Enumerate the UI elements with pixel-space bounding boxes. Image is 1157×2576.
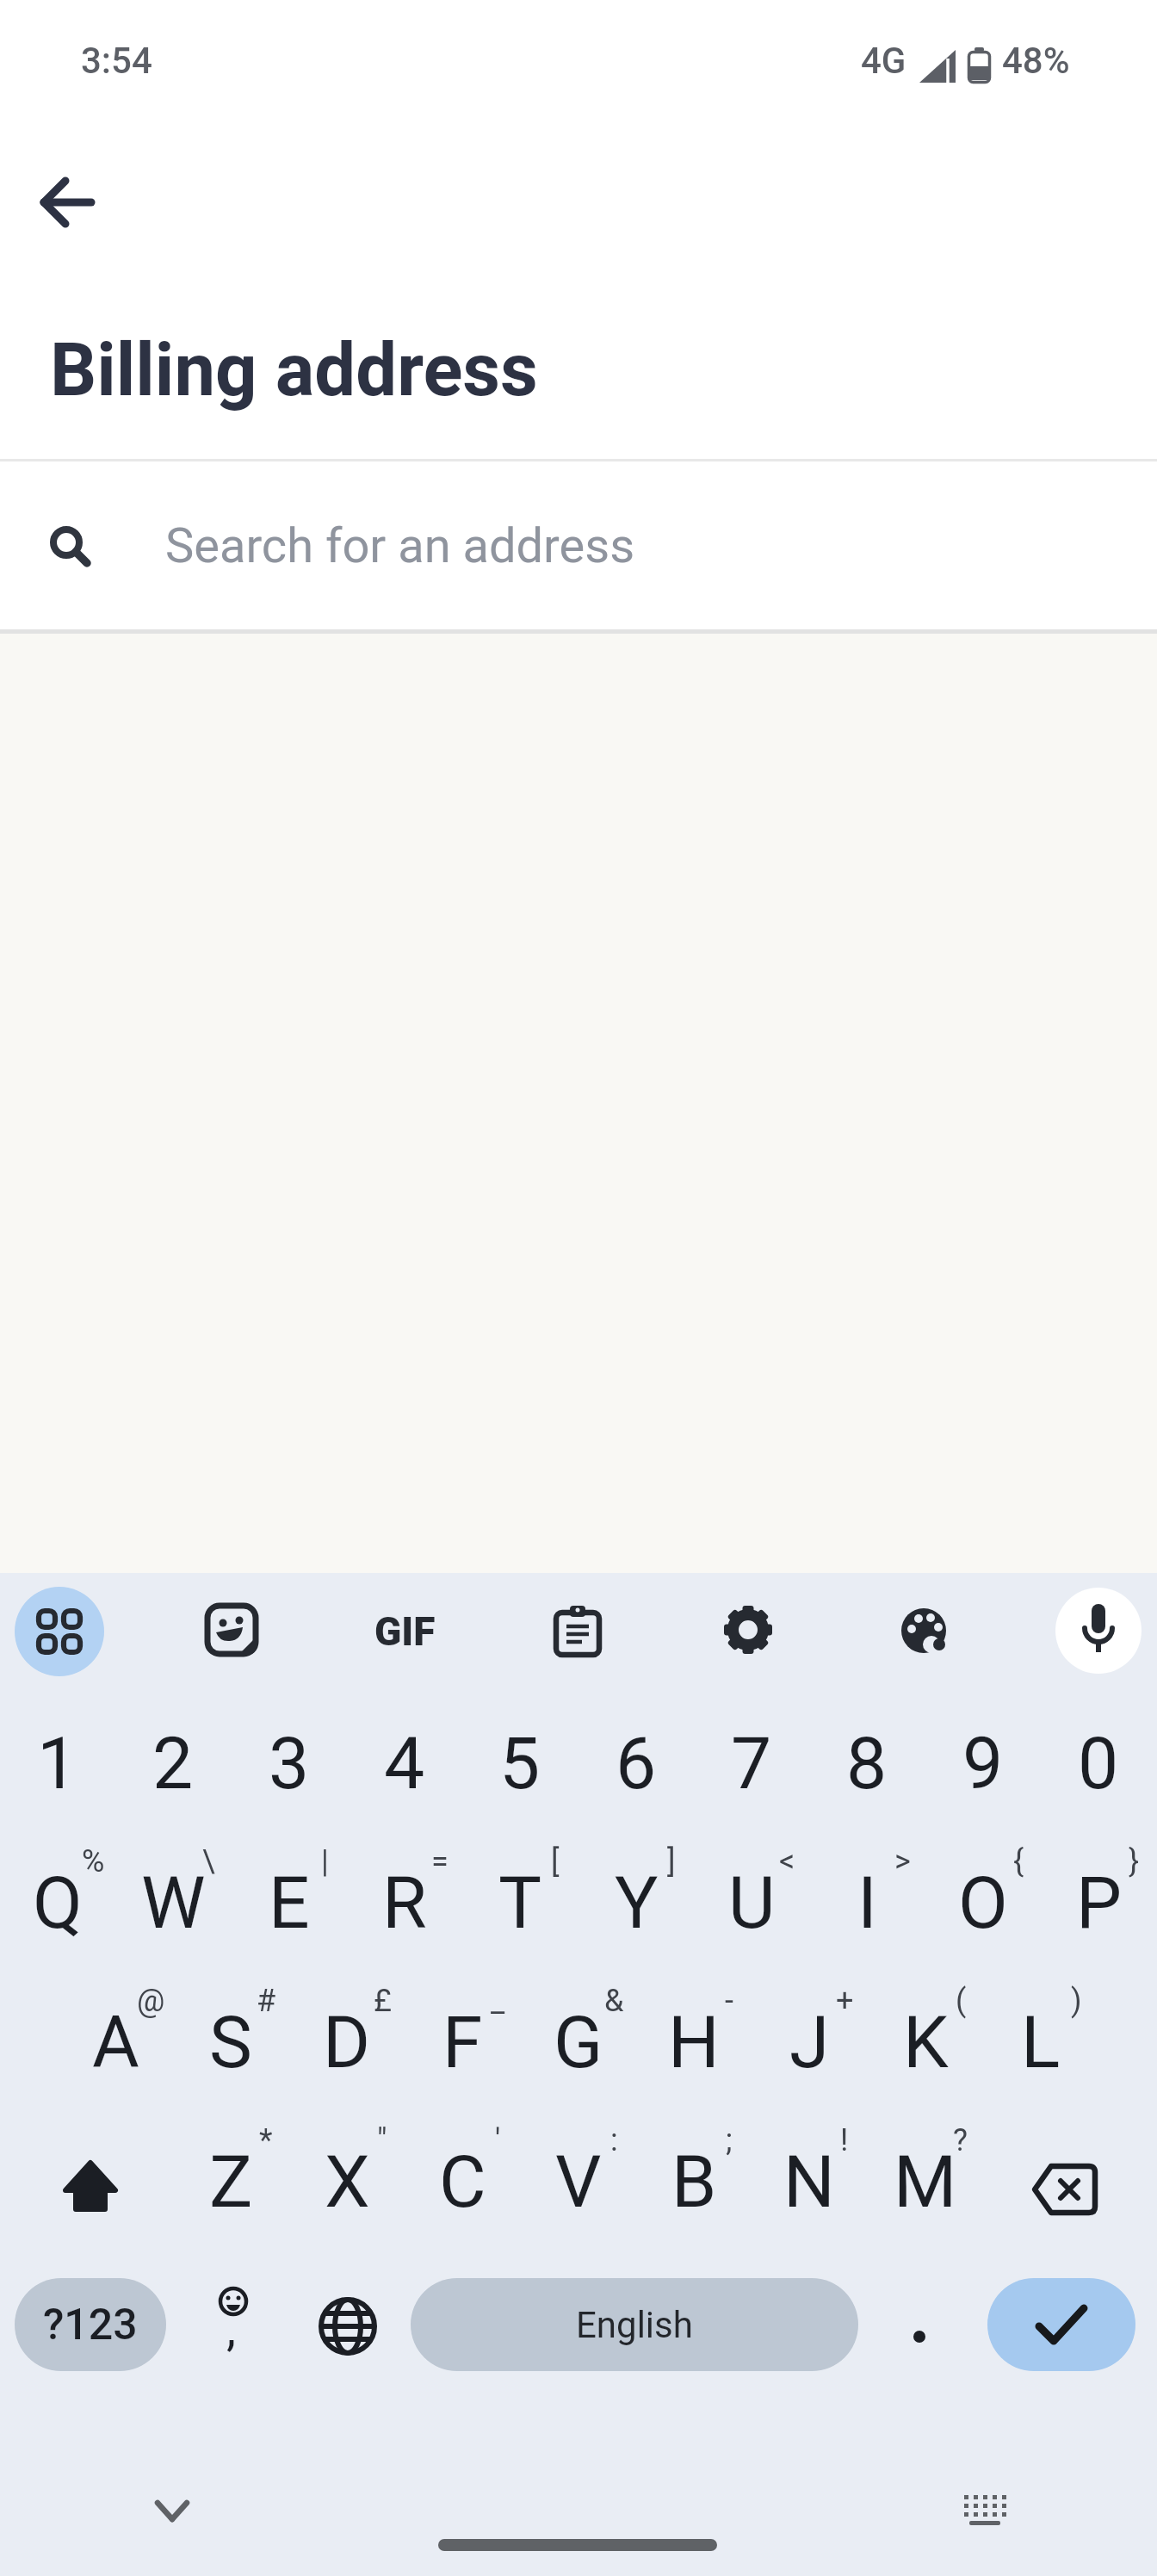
button[interactable] bbox=[63, 2160, 118, 2214]
staticText: D bbox=[323, 2000, 371, 2084]
button[interactable]: 5 bbox=[462, 1694, 578, 1832]
button[interactable]: C bbox=[405, 2113, 520, 2251]
staticText: \ bbox=[202, 1843, 215, 1879]
staticText: English bbox=[576, 2304, 693, 2346]
staticText: Billing address bbox=[50, 327, 538, 413]
staticText: 0 bbox=[1078, 1721, 1119, 1805]
staticText: K bbox=[903, 2000, 949, 2084]
button[interactable] bbox=[15, 1587, 104, 1676]
staticText: P bbox=[1076, 1861, 1122, 1945]
button[interactable]: 4 bbox=[347, 1694, 462, 1832]
button[interactable]: R bbox=[347, 1834, 462, 1972]
staticText: GIF bbox=[374, 1608, 436, 1655]
button[interactable]: S bbox=[173, 1973, 288, 2111]
button[interactable]: 6 bbox=[578, 1694, 694, 1832]
staticText: C bbox=[439, 2139, 486, 2224]
staticText: { bbox=[1013, 1843, 1024, 1879]
button[interactable]: D bbox=[289, 1973, 405, 2111]
button[interactable]: H bbox=[636, 1973, 752, 2111]
staticText: J bbox=[789, 2000, 830, 2084]
button[interactable]: G bbox=[521, 1973, 636, 2111]
button[interactable]: Search for an address bbox=[0, 461, 1157, 629]
button[interactable] bbox=[554, 1606, 602, 1657]
staticText: @ bbox=[137, 1983, 165, 2019]
button[interactable] bbox=[987, 2278, 1135, 2371]
button[interactable]: N bbox=[752, 2113, 867, 2251]
button[interactable] bbox=[38, 175, 96, 230]
staticText: O bbox=[958, 1861, 1008, 1945]
button[interactable]: K bbox=[868, 1973, 983, 2111]
button[interactable]: Z bbox=[173, 2113, 288, 2251]
staticText: = bbox=[431, 1843, 449, 1879]
button[interactable]: 3 bbox=[232, 1694, 347, 1832]
staticText: 1 bbox=[37, 1721, 78, 1805]
staticText: £ bbox=[374, 1983, 392, 2019]
button[interactable] bbox=[318, 2296, 378, 2356]
button[interactable]: 1 bbox=[0, 1694, 115, 1832]
button[interactable]: Y bbox=[578, 1834, 694, 1972]
staticText: # bbox=[257, 1983, 276, 2019]
staticText: L bbox=[1021, 2000, 1061, 2084]
staticText: ' bbox=[495, 2122, 501, 2158]
staticText: Search for an address bbox=[165, 517, 635, 574]
button[interactable] bbox=[900, 1607, 949, 1655]
staticText: 7 bbox=[731, 1721, 772, 1805]
button[interactable]: 9 bbox=[925, 1694, 1041, 1832]
button[interactable]: Q bbox=[0, 1834, 115, 1972]
button[interactable]: 7 bbox=[694, 1694, 809, 1832]
staticText: ?123 bbox=[43, 2300, 138, 2350]
button[interactable]: F bbox=[405, 1973, 520, 2111]
button[interactable] bbox=[205, 1603, 258, 1656]
button[interactable]: T bbox=[462, 1834, 578, 1972]
button[interactable]: V bbox=[521, 2113, 636, 2251]
staticText: 2 bbox=[152, 1721, 194, 1805]
staticText: I bbox=[857, 1861, 877, 1945]
staticText: Y bbox=[615, 1861, 659, 1945]
button[interactable] bbox=[724, 1606, 772, 1654]
button[interactable] bbox=[962, 2493, 1007, 2528]
button[interactable]: 0 bbox=[1041, 1694, 1156, 1832]
staticText: 3 bbox=[269, 1721, 310, 1805]
staticText: E bbox=[269, 1861, 310, 1945]
staticText: ) bbox=[1071, 1983, 1082, 2019]
button[interactable] bbox=[155, 2497, 189, 2528]
staticText: ! bbox=[840, 2122, 849, 2158]
button[interactable]: E bbox=[232, 1834, 347, 1972]
staticText: } bbox=[1129, 1843, 1140, 1879]
staticText: F bbox=[442, 2000, 483, 2084]
button[interactable]: A bbox=[58, 1973, 173, 2111]
button[interactable]: , bbox=[182, 2278, 285, 2371]
button[interactable]: U bbox=[694, 1834, 809, 1972]
button[interactable]: O bbox=[925, 1834, 1041, 1972]
button[interactable]: I bbox=[809, 1834, 925, 1972]
staticText: | bbox=[321, 1843, 329, 1879]
button[interactable] bbox=[1031, 2163, 1098, 2216]
button[interactable]: L bbox=[983, 1973, 1098, 2111]
staticText: + bbox=[836, 1983, 854, 2019]
button[interactable]: ?123 bbox=[15, 2278, 166, 2371]
button[interactable]: English bbox=[411, 2278, 858, 2371]
button[interactable] bbox=[899, 2316, 940, 2357]
staticText: 8 bbox=[846, 1721, 888, 1805]
button[interactable]: GIF bbox=[336, 1588, 473, 1675]
staticText: 9 bbox=[962, 1721, 1004, 1805]
button[interactable]: P bbox=[1041, 1834, 1156, 1972]
staticText: A bbox=[92, 2000, 139, 2084]
staticText: V bbox=[555, 2139, 602, 2224]
button[interactable]: B bbox=[636, 2113, 752, 2251]
button[interactable]: X bbox=[289, 2113, 405, 2251]
button[interactable] bbox=[1055, 1588, 1142, 1674]
staticText: & bbox=[604, 1983, 624, 2019]
button[interactable]: M bbox=[868, 2113, 983, 2251]
button[interactable]: W bbox=[115, 1834, 231, 1972]
staticText: - bbox=[725, 1983, 733, 2019]
staticText: 4 bbox=[384, 1721, 425, 1805]
staticText: 4G bbox=[861, 40, 906, 82]
staticText: ] bbox=[667, 1843, 676, 1879]
staticText: > bbox=[894, 1843, 911, 1879]
staticText: ? bbox=[953, 2122, 968, 2158]
button[interactable]: 8 bbox=[809, 1694, 925, 1832]
button[interactable]: J bbox=[752, 1973, 867, 2111]
staticText: % bbox=[82, 1843, 105, 1879]
button[interactable]: 2 bbox=[115, 1694, 231, 1832]
